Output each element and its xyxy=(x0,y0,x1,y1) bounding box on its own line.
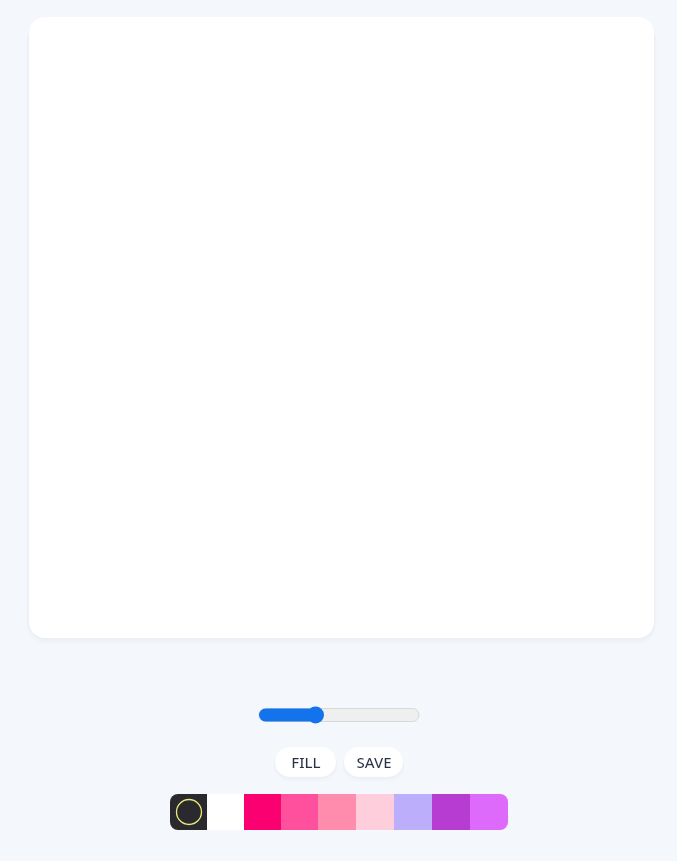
button[interactable]: Colour 1 xyxy=(170,794,207,830)
button[interactable]: FILL xyxy=(275,747,336,777)
button[interactable]: SAVE xyxy=(344,747,403,777)
button[interactable]: Brush size xyxy=(259,700,419,730)
staticText: SAVE xyxy=(356,752,392,772)
button[interactable]: Colour 9 xyxy=(470,794,508,830)
staticText: FILL xyxy=(291,752,321,772)
